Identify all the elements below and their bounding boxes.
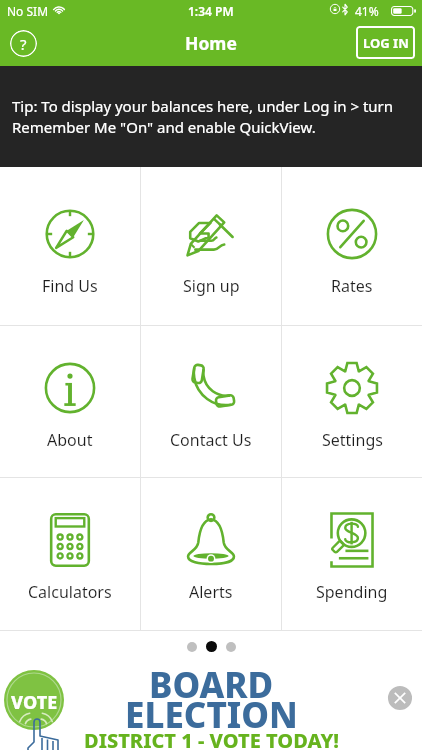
button[interactable]: Sign up <box>141 167 281 325</box>
staticText: Contact Us <box>170 429 252 451</box>
staticText: Calculators <box>28 581 112 603</box>
staticText: DISTRICT 1 - VOTE TODAY! <box>84 727 339 750</box>
staticText: Alerts <box>189 581 233 603</box>
button[interactable]: Help <box>10 30 37 57</box>
staticText: No SIM <box>7 3 49 19</box>
button[interactable]: Settings <box>282 326 422 477</box>
button[interactable]: Close ad <box>386 684 414 712</box>
staticText: Rates <box>331 275 373 297</box>
staticText: 1:34 PM <box>188 3 234 19</box>
button[interactable]: Find Us <box>0 167 140 325</box>
button[interactable]: Calculators <box>0 478 140 630</box>
staticText: Find Us <box>42 275 98 297</box>
staticText: Home <box>185 31 237 55</box>
button[interactable]: LOG IN <box>356 26 415 59</box>
staticText: LOG IN <box>363 34 409 52</box>
button[interactable]: Contact Us <box>141 326 281 477</box>
staticText: About <box>47 429 93 451</box>
staticText: Sign up <box>183 275 240 297</box>
staticText: ? <box>20 34 27 54</box>
staticText: Settings <box>322 429 383 451</box>
staticText: VOTE <box>11 690 58 715</box>
staticText: ELECTION <box>125 691 298 739</box>
button[interactable]: About <box>0 326 140 477</box>
button[interactable]: Rates <box>282 167 422 325</box>
staticText: 41% <box>355 3 379 19</box>
staticText: Spending <box>316 581 388 603</box>
staticText: BOARD <box>149 661 274 709</box>
button[interactable]: Spending <box>282 478 422 630</box>
staticText: Tip: To display your balances here, unde… <box>12 96 410 138</box>
button[interactable]: Alerts <box>141 478 281 630</box>
